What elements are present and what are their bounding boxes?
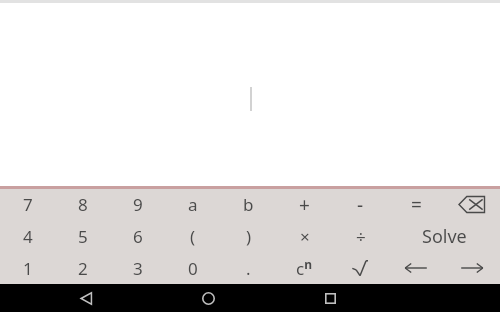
button[interactable]: b [220, 189, 276, 220]
staticText: a [188, 193, 198, 216]
staticText: ) [246, 225, 252, 248]
staticText: . [246, 257, 251, 280]
button[interactable]: Square root [332, 252, 388, 284]
button[interactable]: a [165, 189, 220, 220]
staticText: 7 [23, 193, 33, 216]
button[interactable]: 8 [55, 189, 110, 220]
staticText: - [357, 192, 364, 218]
button[interactable]: Move right [444, 252, 500, 284]
staticText: 1 [23, 257, 33, 280]
button[interactable]: ( [165, 220, 221, 252]
staticText: Solve [422, 224, 467, 249]
button[interactable]: Home [178, 284, 239, 312]
button[interactable]: 9 [110, 189, 165, 220]
button[interactable]: 3 [110, 252, 165, 284]
button[interactable]: 0 [165, 252, 220, 284]
staticText: ( [190, 225, 196, 248]
button[interactable]: = [388, 189, 444, 220]
button[interactable]: Power [276, 252, 332, 284]
staticText: cn [296, 256, 312, 280]
button[interactable]: Solve [389, 220, 500, 252]
button[interactable]: ) [221, 220, 277, 252]
button[interactable]: Backspace [444, 189, 500, 220]
button[interactable]: + [276, 189, 332, 220]
staticText: 0 [188, 257, 198, 280]
staticText: 3 [133, 257, 143, 280]
staticText: 4 [23, 225, 33, 248]
staticText: b [243, 193, 254, 216]
button[interactable]: Move left [388, 252, 444, 284]
button[interactable]: 5 [55, 220, 110, 252]
staticText: ÷ [356, 225, 366, 248]
button[interactable]: 6 [110, 220, 165, 252]
button[interactable]: 7 [0, 189, 55, 220]
button[interactable]: . [220, 252, 276, 284]
staticText: 9 [133, 193, 143, 216]
staticText: × [300, 225, 310, 248]
button[interactable]: - [332, 189, 388, 220]
button[interactable]: Back [56, 284, 117, 312]
staticText: 2 [78, 257, 88, 280]
button[interactable]: Recent apps [300, 284, 361, 312]
button[interactable]: 2 [55, 252, 110, 284]
staticText: 6 [133, 225, 143, 248]
button[interactable]: 1 [0, 252, 55, 284]
staticText: = [411, 192, 422, 218]
staticText: 5 [78, 225, 88, 248]
button[interactable]: ÷ [333, 220, 389, 252]
button[interactable]: × [277, 220, 333, 252]
staticText: 8 [78, 193, 88, 216]
staticText: + [299, 192, 310, 218]
button[interactable]: 4 [0, 220, 55, 252]
